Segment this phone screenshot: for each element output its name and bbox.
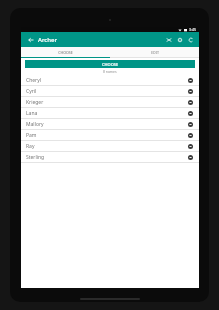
button[interactable]: Krieger xyxy=(21,97,199,108)
staticText: Sterling xyxy=(26,154,45,161)
staticText: EDIT xyxy=(151,50,159,55)
staticText: CHOOSE xyxy=(58,50,73,55)
staticText: 3:45 xyxy=(189,27,196,32)
button[interactable]: Remove Ray xyxy=(186,142,194,150)
staticText: CHOOSE xyxy=(102,62,119,67)
button[interactable]: Refresh xyxy=(185,34,196,45)
button[interactable]: Cyril xyxy=(21,86,199,97)
button[interactable]: Remove Krieger xyxy=(186,98,194,106)
button[interactable]: Lana xyxy=(21,108,199,119)
staticText: Lana xyxy=(26,110,38,117)
button[interactable]: Remove Cyril xyxy=(186,87,194,95)
button[interactable]: Remove Pam xyxy=(186,131,194,139)
staticText: Mallory xyxy=(26,121,44,128)
staticText: Archer xyxy=(38,36,58,44)
button[interactable]: Mallory xyxy=(21,119,199,130)
button[interactable]: Remove Cheryl xyxy=(186,76,194,84)
staticText: Cheryl xyxy=(26,77,41,84)
button[interactable]: Shuffle xyxy=(163,34,174,45)
button[interactable]: Remove Lana xyxy=(186,109,194,117)
button[interactable]: Cheryl xyxy=(21,75,199,86)
button[interactable]: EDIT xyxy=(110,47,199,57)
staticText: Cyril xyxy=(26,88,37,95)
button[interactable]: Ray xyxy=(21,141,199,152)
button[interactable]: CHOOSE xyxy=(25,60,195,68)
button[interactable]: Remove Sterling xyxy=(186,153,194,161)
staticText: Krieger xyxy=(26,99,44,106)
button[interactable]: Sterling xyxy=(21,152,199,163)
staticText: 8 names xyxy=(103,69,117,74)
button[interactable]: Pam xyxy=(21,130,199,141)
staticText: Ray xyxy=(26,143,35,150)
button[interactable]: Remove Mallory xyxy=(186,120,194,128)
button[interactable]: Settings xyxy=(174,34,185,45)
staticText: Pam xyxy=(26,132,37,139)
button[interactable]: CHOOSE xyxy=(21,47,110,57)
button[interactable]: Navigate up xyxy=(25,34,36,45)
